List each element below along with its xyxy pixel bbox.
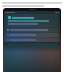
button[interactable]: [6, 33, 58, 37]
button[interactable]: [6, 28, 58, 32]
button[interactable]: [6, 38, 58, 42]
button[interactable]: [6, 14, 58, 27]
